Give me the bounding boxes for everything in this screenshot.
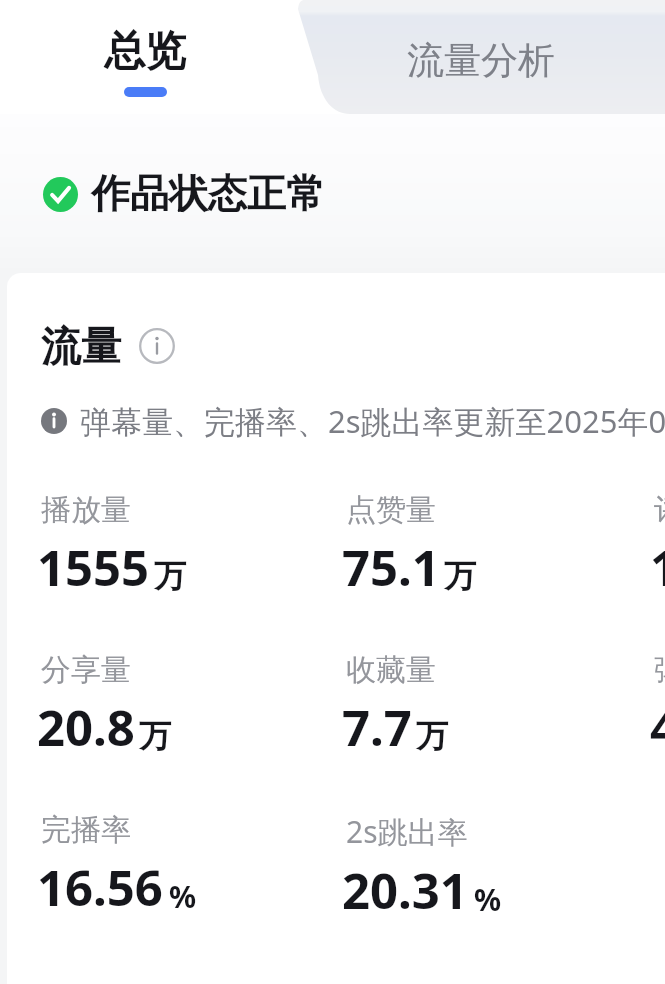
- staticText: 7.7: [342, 694, 412, 761]
- staticText: 万: [139, 716, 171, 756]
- staticText: 弹幕量、完播率、2s跳出率更新至2025年08月29日: [80, 400, 665, 442]
- staticText: 75.1: [342, 534, 440, 601]
- staticText: 2s跳出率: [346, 811, 468, 852]
- staticText: 播放量: [41, 491, 131, 529]
- button[interactable]: 播放量: [41, 491, 190, 601]
- staticText: 16.56: [37, 854, 163, 921]
- staticText: 万: [444, 556, 476, 596]
- staticText: 1: [650, 534, 665, 601]
- button[interactable]: 2s跳出率: [346, 811, 506, 924]
- button[interactable]: 评论量: [654, 491, 665, 601]
- staticText: 万: [416, 716, 448, 756]
- staticText: 1555: [37, 534, 150, 601]
- button[interactable]: 作品状态正常: [43, 176, 325, 225]
- staticText: 收藏量: [346, 651, 436, 689]
- button[interactable]: 收藏量: [346, 651, 452, 761]
- button[interactable]: 弹幕量: [654, 651, 665, 761]
- button[interactable]: 完播率: [41, 811, 201, 921]
- staticText: %: [169, 876, 197, 917]
- staticText: 分享量: [41, 651, 131, 689]
- button[interactable]: 分享量: [41, 651, 175, 761]
- staticText: 完播率: [41, 811, 131, 849]
- staticText: 作品状态正常: [91, 169, 325, 218]
- button[interactable]: 流量分析: [290, 0, 665, 114]
- staticText: 20.8: [37, 694, 135, 761]
- button[interactable]: 总览: [0, 0, 290, 114]
- staticText: 流量分析: [407, 37, 555, 84]
- staticText: 弹幕量: [654, 651, 665, 689]
- staticText: 总览: [104, 26, 186, 78]
- staticText: %: [474, 879, 502, 920]
- staticText: 万: [154, 556, 186, 596]
- staticText: 评论量: [654, 491, 665, 529]
- staticText: 点赞量: [346, 491, 436, 529]
- button[interactable]: 点赞量: [346, 491, 480, 601]
- staticText: 4: [650, 694, 665, 761]
- staticText: 20.31: [342, 857, 468, 924]
- button[interactable]: 流量说明: [139, 328, 175, 364]
- staticText: 流量: [41, 321, 121, 371]
